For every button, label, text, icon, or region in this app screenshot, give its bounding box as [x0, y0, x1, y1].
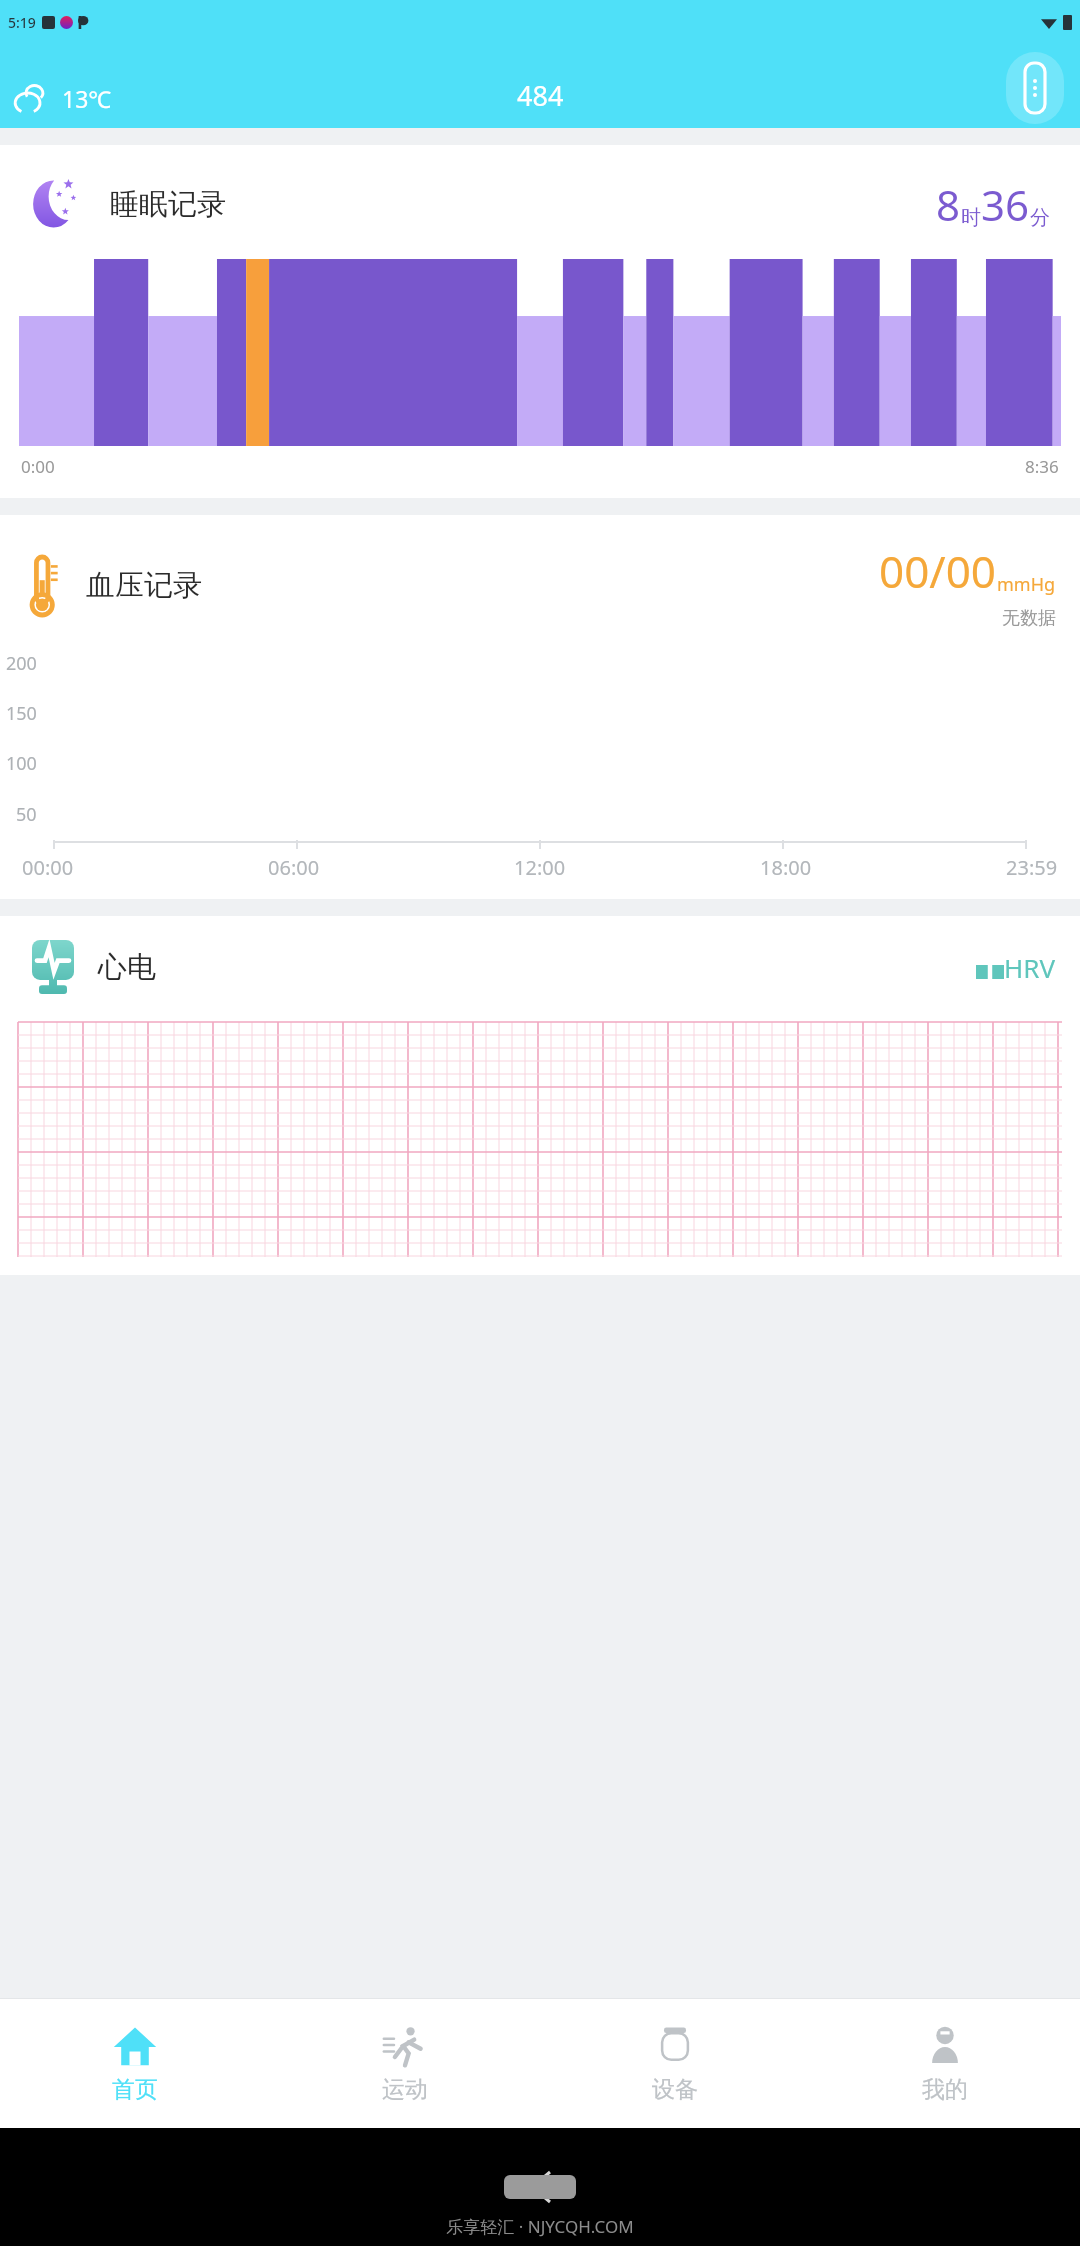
button[interactable]: 设备	[540, 1999, 810, 2128]
staticText: 5:19	[8, 13, 36, 32]
staticText: 心电	[98, 949, 156, 986]
staticText: 50	[16, 802, 37, 827]
staticText: 设备	[652, 2075, 698, 2104]
staticText: 0:00	[21, 455, 55, 478]
staticText: 血压记录	[86, 567, 202, 604]
staticText: 36	[981, 176, 1030, 233]
staticText: mmHg	[997, 572, 1056, 597]
button[interactable]: 睡眠记录	[0, 145, 1080, 498]
staticText: 时	[961, 205, 981, 230]
staticText: 18:00	[760, 854, 812, 881]
staticText: 100	[6, 751, 37, 776]
staticText: 200	[6, 651, 37, 676]
staticText: 8	[936, 176, 961, 233]
staticText: 首页	[112, 2075, 158, 2104]
staticText: 13℃	[62, 83, 112, 114]
staticText: 8:36	[1025, 455, 1059, 478]
staticText: 23:59	[1006, 854, 1058, 881]
staticText: 00/00	[879, 541, 997, 601]
staticText: 484	[517, 77, 564, 114]
button[interactable]: 我的	[810, 1999, 1080, 2128]
button[interactable]: 血压记录	[0, 515, 1080, 899]
button[interactable]: Device	[1006, 52, 1064, 124]
staticText: 运动	[382, 2075, 428, 2104]
staticText: 乐享轻汇 · NJYCQH.COM	[446, 2215, 634, 2238]
staticText: 00:00	[22, 854, 74, 881]
button[interactable]: 运动	[270, 1999, 540, 2128]
staticText: 无数据	[1002, 607, 1056, 630]
staticText: HRV	[1004, 950, 1056, 985]
staticText: 分	[1030, 205, 1050, 230]
staticText: 150	[6, 701, 37, 726]
button[interactable]: 心电	[0, 916, 1080, 1275]
staticText: 睡眠记录	[110, 186, 226, 223]
staticText: 我的	[922, 2075, 968, 2104]
staticText: 06:00	[268, 854, 320, 881]
staticText: 12:00	[514, 854, 566, 881]
button[interactable]: 首页	[0, 1999, 270, 2128]
